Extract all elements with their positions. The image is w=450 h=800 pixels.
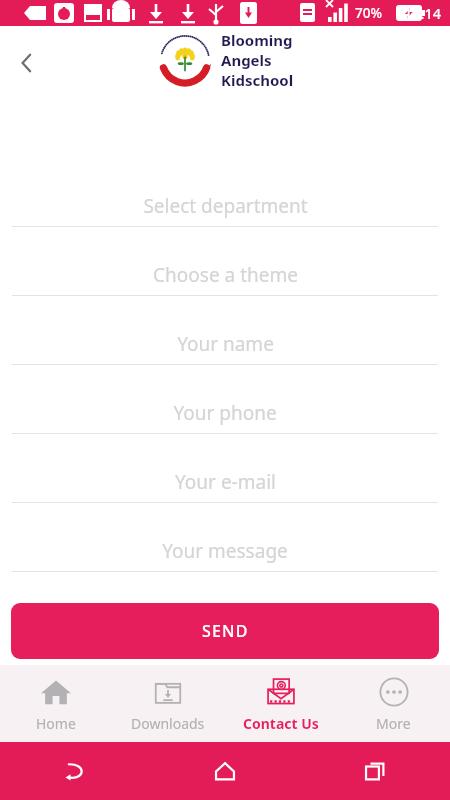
staticText: Your message [162,538,288,564]
staticText: Your name [177,331,274,357]
staticText: 70% [355,4,382,22]
button[interactable]: Back [0,742,150,800]
staticText: Home [36,714,76,733]
button[interactable]: Back [6,42,48,84]
staticText: Angels [221,50,272,70]
button[interactable]: Home [0,665,112,742]
staticText: Contact Us [243,714,319,733]
staticText: 12:14 [404,3,442,23]
staticText: Kidschool [221,70,294,90]
staticText: Downloads [131,714,205,733]
button[interactable]: SEND [11,603,439,659]
button[interactable]: Choose a theme [0,227,450,296]
button[interactable]: Home [150,742,300,800]
staticText: More [376,714,411,733]
button[interactable]: Your e-mail [0,434,450,503]
button[interactable]: Contact Us [224,665,337,742]
button[interactable]: Your name [0,296,450,365]
staticText: SEND [202,620,249,642]
button[interactable]: More [337,665,450,742]
staticText: Your phone [173,400,277,426]
staticText: Choose a theme [153,262,298,288]
button[interactable]: Downloads [112,665,224,742]
staticText: Your e-mail [175,469,276,495]
staticText: Select department [143,193,308,219]
button[interactable]: Select department [0,158,450,227]
button[interactable]: Your phone [0,365,450,434]
button[interactable]: Recents [300,742,450,800]
button[interactable]: Your message [0,503,450,572]
staticText: Blooming [221,30,293,50]
